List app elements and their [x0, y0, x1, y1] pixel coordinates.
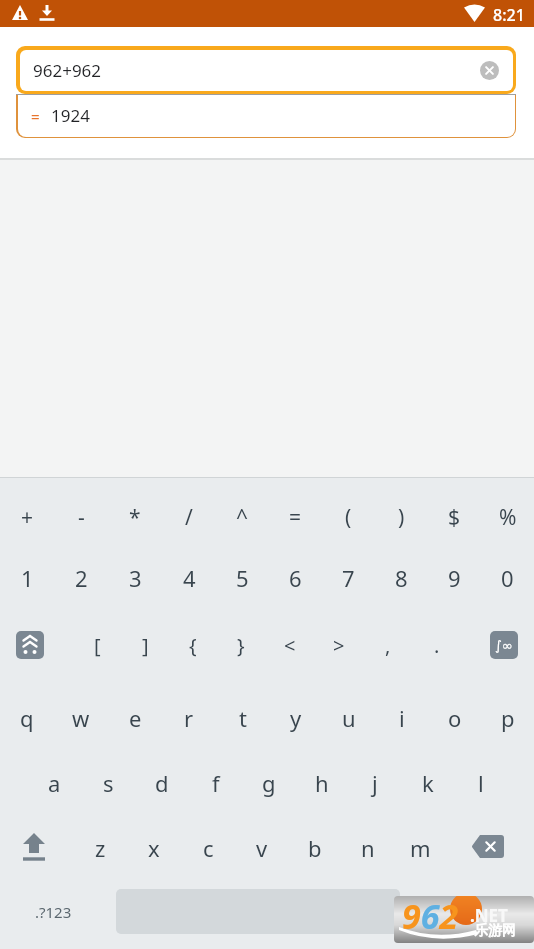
button[interactable]: j	[348, 753, 401, 813]
button[interactable]: <	[265, 615, 314, 675]
staticText: -	[78, 503, 85, 532]
button[interactable]: >	[314, 615, 363, 675]
staticText: z	[95, 833, 106, 863]
button[interactable]: )	[375, 487, 428, 547]
button[interactable]: o	[428, 688, 481, 748]
staticText: q	[20, 703, 34, 733]
button[interactable]: k	[401, 753, 454, 813]
staticText: [	[94, 632, 101, 659]
staticText: *	[129, 503, 141, 532]
button[interactable]: 0	[481, 548, 534, 608]
button[interactable]	[480, 61, 499, 80]
button[interactable]: z	[73, 818, 127, 878]
staticText: /	[185, 503, 193, 532]
button[interactable]: {	[169, 615, 217, 675]
staticText: t	[239, 703, 247, 733]
button[interactable]: 1	[0, 548, 54, 608]
staticText: 1	[21, 563, 34, 593]
staticText: (	[345, 503, 352, 532]
staticText: )	[398, 503, 405, 532]
staticText: 0	[501, 563, 514, 593]
button[interactable]: $	[428, 487, 481, 547]
button[interactable]: v	[235, 818, 288, 878]
button[interactable]: (	[322, 487, 375, 547]
button[interactable]: y	[269, 688, 322, 748]
button[interactable]	[14, 831, 54, 865]
staticText: +	[21, 503, 34, 532]
button[interactable]: 4	[162, 548, 216, 608]
staticText: f	[212, 768, 220, 798]
button[interactable]: 2	[54, 548, 108, 608]
button[interactable]: t	[216, 688, 269, 748]
button[interactable]: 8	[375, 548, 428, 608]
staticText: ∫∞	[495, 638, 513, 653]
staticText: .NET	[470, 904, 508, 927]
button[interactable]: 962+962	[16, 46, 516, 94]
button[interactable]	[472, 835, 504, 858]
button[interactable]: u	[322, 688, 375, 748]
button[interactable]: 9	[428, 548, 481, 608]
staticText: 3	[129, 563, 142, 593]
button[interactable]: .?123	[24, 882, 82, 942]
button[interactable]: h	[295, 753, 348, 813]
button[interactable]: s	[81, 753, 135, 813]
button[interactable]: n	[341, 818, 394, 878]
button[interactable]: 962	[394, 896, 534, 943]
button[interactable]: m	[394, 818, 447, 878]
button[interactable]: 6	[269, 548, 322, 608]
button[interactable]: a	[27, 753, 81, 813]
staticText: m	[410, 833, 431, 863]
button[interactable]: l	[454, 753, 507, 813]
staticText: g	[262, 768, 276, 798]
staticText: k	[422, 768, 434, 798]
button[interactable]: ,	[363, 615, 412, 675]
staticText: %	[499, 503, 517, 532]
staticText: $	[448, 503, 461, 532]
staticText: 2	[75, 563, 88, 593]
button[interactable]: x	[127, 818, 181, 878]
button[interactable]: ^	[216, 487, 269, 547]
button[interactable]: }	[217, 615, 265, 675]
staticText: 乐游网	[474, 922, 516, 940]
staticText: <	[284, 632, 296, 659]
staticText: u	[342, 703, 356, 733]
staticText: {	[189, 632, 197, 659]
button[interactable]: =	[16, 94, 516, 138]
staticText: o	[448, 703, 462, 733]
button[interactable]: %	[481, 487, 534, 547]
button[interactable]: ]	[121, 615, 169, 675]
button[interactable]: ∫∞	[490, 631, 518, 659]
button[interactable]: =	[269, 487, 322, 547]
button[interactable]	[16, 631, 44, 659]
staticText: 7	[342, 563, 355, 593]
button[interactable]: 7	[322, 548, 375, 608]
button[interactable]: *	[108, 487, 162, 547]
button[interactable]: f	[189, 753, 242, 813]
button[interactable]: p	[481, 688, 534, 748]
staticText: ,	[385, 632, 391, 659]
button[interactable]: b	[288, 818, 341, 878]
button[interactable]: .	[412, 615, 461, 675]
button[interactable]: [	[73, 615, 121, 675]
button[interactable]: -	[54, 487, 108, 547]
staticText: p	[501, 703, 515, 733]
button[interactable]: e	[108, 688, 162, 748]
button[interactable]: g	[242, 753, 295, 813]
button[interactable]: r	[162, 688, 216, 748]
button[interactable]: 3	[108, 548, 162, 608]
button[interactable]: /	[162, 487, 216, 547]
staticText: c	[203, 833, 214, 863]
button[interactable]: i	[375, 688, 428, 748]
button[interactable]: d	[135, 753, 189, 813]
staticText: 962	[402, 896, 459, 939]
staticText: ]	[142, 632, 149, 659]
staticText: .	[434, 632, 440, 659]
staticText: n	[361, 833, 375, 863]
button[interactable]: 5	[216, 548, 269, 608]
button[interactable]: w	[54, 688, 108, 748]
button[interactable]: c	[181, 818, 235, 878]
button[interactable]: +	[0, 487, 54, 547]
staticText: 9	[448, 563, 461, 593]
button[interactable]: q	[0, 688, 54, 748]
